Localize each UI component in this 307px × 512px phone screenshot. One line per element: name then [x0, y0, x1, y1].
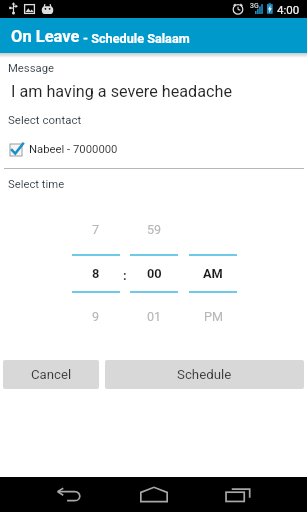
button[interactable]: Recent apps	[214, 477, 261, 512]
staticText: AM	[203, 266, 223, 281]
staticText: - Schedule Salaam	[83, 31, 190, 46]
button[interactable]: PM	[189, 293, 237, 340]
staticText: 9	[92, 309, 100, 324]
button[interactable]: Cancel	[3, 360, 99, 389]
staticText: Select contact	[8, 113, 82, 126]
button[interactable]: 00	[130, 256, 178, 291]
button[interactable]: Schedule	[105, 360, 304, 389]
button[interactable]: On Leave	[0, 18, 307, 53]
button[interactable]: 9	[72, 293, 120, 340]
button[interactable]: Back	[45, 477, 92, 512]
staticText: Cancel	[31, 367, 72, 382]
staticText: 8	[92, 266, 100, 281]
button[interactable]: AM	[189, 256, 237, 291]
button[interactable]: 7	[72, 205, 120, 254]
staticText: I am having a severe headache	[11, 82, 232, 101]
staticText: 7	[92, 222, 100, 237]
button[interactable]: 59	[130, 205, 178, 254]
staticText: PM	[204, 309, 223, 324]
staticText: :	[123, 268, 127, 283]
staticText: 01	[147, 309, 162, 324]
staticText: 59	[147, 222, 162, 237]
button[interactable]: Home	[130, 477, 177, 512]
button[interactable]: 8	[72, 256, 120, 291]
staticText: Select time	[8, 178, 65, 191]
button[interactable]: 01	[130, 293, 178, 340]
staticText: 00	[147, 266, 162, 281]
staticText: On Leave	[11, 27, 80, 46]
button[interactable]: Nabeel - 7000000	[0, 139, 307, 160]
staticText: Nabeel - 7000000	[29, 143, 118, 156]
staticText: Schedule	[177, 367, 232, 383]
staticText: 4:00	[277, 3, 300, 16]
staticText: 3G	[250, 2, 259, 10]
staticText: Message	[8, 62, 54, 75]
